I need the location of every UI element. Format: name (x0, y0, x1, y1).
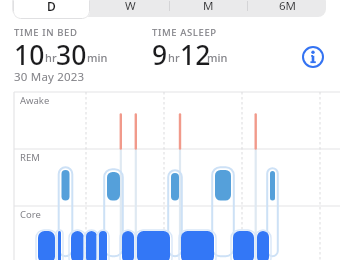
staticText: hr (168, 50, 180, 65)
staticText: 9 (152, 37, 168, 73)
staticText: Awake (20, 94, 50, 107)
staticText: D (47, 0, 56, 14)
staticText: 30 May 2023 (14, 69, 85, 85)
staticText: Core (20, 208, 41, 221)
staticText: M (203, 0, 214, 14)
staticText: TIME ASLEEP (152, 26, 217, 39)
staticText: REM (20, 151, 40, 164)
staticText: 30 (56, 37, 87, 73)
button[interactable]: D (13, 0, 90, 19)
staticText: 10 (14, 37, 45, 73)
staticText: 12 (180, 37, 211, 73)
staticText: hr (45, 50, 57, 65)
button[interactable] (302, 46, 324, 68)
staticText: W (125, 0, 136, 14)
staticText: 6M (279, 0, 297, 14)
button[interactable]: M (169, 0, 247, 17)
button[interactable]: W (91, 0, 169, 17)
staticText: TIME IN BED (14, 26, 78, 39)
staticText: min (87, 50, 108, 65)
staticText: min (207, 50, 228, 65)
button[interactable]: 6M (248, 0, 327, 17)
